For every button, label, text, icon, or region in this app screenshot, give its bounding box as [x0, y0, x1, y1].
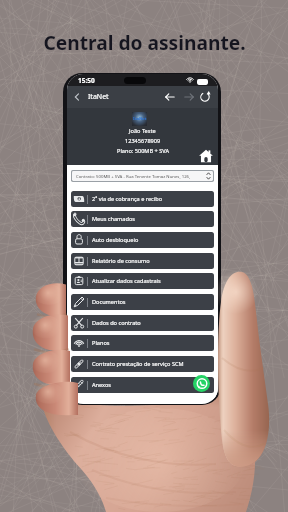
button[interactable]: Relatório de consumo — [71, 253, 214, 269]
staticText: Contrato: 500MB + SVA - Rua Tenente Toma… — [76, 173, 204, 179]
staticText: Dados do contrato — [92, 319, 141, 327]
staticText: João Teste — [129, 127, 156, 135]
staticText: Documentos — [92, 298, 126, 306]
button[interactable]: Documentos — [71, 294, 214, 310]
button[interactable]: Auto desbloqueio — [71, 232, 214, 248]
button[interactable]: WhatsApp — [193, 375, 210, 392]
button[interactable]: Planos — [71, 335, 214, 351]
button[interactable]: Atualizar dados cadastrais — [71, 273, 214, 289]
staticText: Plano: 500MB + SVA — [117, 147, 169, 155]
staticText: Central do assinante. — [43, 29, 246, 55]
button[interactable]: Início — [197, 147, 214, 164]
staticText: Relatório de consumo — [92, 257, 150, 265]
button[interactable]: Meus chamados — [71, 211, 214, 227]
staticText: Meus chamados — [92, 215, 135, 223]
staticText: Atualizar dados cadastrais — [92, 277, 161, 285]
staticText: 15:50 — [78, 76, 95, 85]
staticText: Planos — [92, 339, 110, 347]
staticText: Anexos — [92, 381, 111, 389]
button[interactable]: Dados do contrato — [71, 315, 214, 331]
staticText: 12345678909 — [125, 137, 161, 145]
staticText: Contrato prestação de serviço SCM — [92, 360, 184, 368]
staticText: ItaNet — [88, 92, 109, 102]
button[interactable]: Contrato: 500MB + SVA - Rua Tenente Toma… — [72, 171, 213, 181]
staticText: 2ª via de cobrança e recibo — [92, 195, 163, 203]
button[interactable]: Anexos — [71, 377, 214, 393]
staticText: Auto desbloqueio — [92, 236, 139, 244]
staticText: ItaNet — [133, 116, 147, 122]
button[interactable]: 2ª via de cobrança e recibo — [71, 191, 214, 207]
button[interactable]: Contrato prestação de serviço SCM — [71, 356, 214, 372]
